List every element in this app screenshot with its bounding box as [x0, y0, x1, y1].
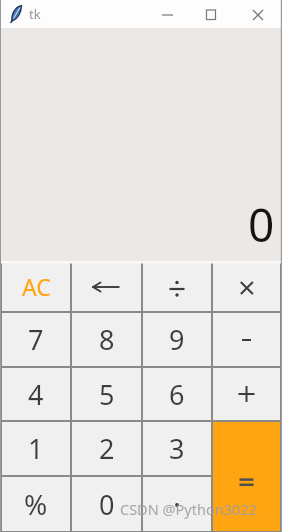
staticText: CSDN @Python3022 [120, 499, 257, 519]
button[interactable]: 5 [71, 367, 142, 421]
button[interactable]: 6 [142, 367, 212, 421]
staticText: 3 [169, 430, 185, 467]
button[interactable]: 1 [1, 421, 71, 476]
staticText: 8 [99, 321, 115, 358]
button[interactable]: × [212, 261, 281, 312]
staticText: 4 [28, 376, 44, 413]
staticText: tk [29, 5, 41, 23]
staticText: 7 [28, 321, 44, 358]
button[interactable] [212, 421, 281, 532]
button[interactable] [71, 261, 142, 312]
staticText: 1 [28, 430, 44, 467]
button[interactable]: 0 [71, 476, 142, 532]
staticText: 2 [99, 430, 115, 467]
staticText: 5 [99, 376, 115, 413]
button[interactable] [236, 0, 282, 28]
button[interactable] [142, 261, 212, 312]
button[interactable]: 3 [142, 421, 212, 476]
button[interactable] [144, 0, 190, 28]
button[interactable]: 9 [142, 312, 212, 367]
staticText: % [24, 485, 48, 523]
staticText: × [238, 266, 256, 308]
button[interactable] [212, 367, 281, 421]
button[interactable]: 2 [71, 421, 142, 476]
button[interactable]: % [1, 476, 71, 532]
button[interactable]: 4 [1, 367, 71, 421]
button[interactable] [212, 312, 281, 367]
button[interactable]: 7 [1, 312, 71, 367]
staticText: 0 [248, 193, 275, 256]
staticText: 0 [99, 486, 115, 523]
button[interactable] [190, 0, 236, 28]
staticText: 6 [169, 376, 185, 413]
button[interactable]: AC [1, 261, 71, 312]
staticText: AC [22, 271, 51, 302]
staticText: 9 [169, 321, 185, 358]
button[interactable] [142, 476, 212, 532]
button[interactable]: 8 [71, 312, 142, 367]
